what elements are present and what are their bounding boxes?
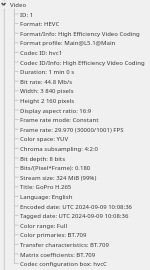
staticText: Chroma subsampling: 4:2:0 <box>20 145 98 153</box>
button[interactable]: Tagged date: UTC 2024-09-09 10:08:36 <box>0 210 150 221</box>
button[interactable]: Format profile: Main@L5.1@Main <box>0 37 150 48</box>
staticText: Display aspect ratio: 16:9 <box>20 107 92 115</box>
button[interactable]: Codec ID: hvc1 <box>0 47 150 58</box>
button[interactable]: Display aspect ratio: 16:9 <box>0 105 150 116</box>
staticText: Stream size: 324 MiB (99%) <box>20 174 97 182</box>
button[interactable]: Stream size: 324 MiB (99%) <box>0 172 150 183</box>
button[interactable]: Duration: 1 min 0 s <box>0 66 150 77</box>
button[interactable]: Collapse Video <box>0 0 150 10</box>
staticText: Width: 3 840 pixels <box>20 87 74 95</box>
staticText: Height 2 160 pixels <box>20 97 75 105</box>
button[interactable]: Width: 3 840 pixels <box>0 85 150 96</box>
staticText: Codec configuration box: hvcC <box>20 260 107 268</box>
button[interactable]: Color range: Full <box>0 220 150 231</box>
button[interactable]: Matrix coefficients: BT.709 <box>0 249 150 260</box>
staticText: Format profile: Main@L5.1@Main <box>20 39 116 47</box>
button[interactable]: Color space: YUV <box>0 133 150 144</box>
staticText: Language: English <box>20 193 73 201</box>
button[interactable]: Title: GoPro H.265 <box>0 181 150 192</box>
staticText: Title: GoPro H.265 <box>20 183 72 191</box>
staticText: Color range: Full <box>20 222 67 230</box>
staticText: Tagged date: UTC 2024-09-09 10:08:36 <box>20 212 129 220</box>
button[interactable]: Language: English <box>0 191 150 202</box>
staticText: Format/Info: High Efficiency Video Codin… <box>20 30 140 38</box>
button[interactable]: ID: 1 <box>0 9 150 20</box>
staticText: Bit rate: 44.8 Mb/s <box>20 78 73 86</box>
button[interactable]: Codec configuration box: hvcC <box>0 258 150 269</box>
staticText: Color space: YUV <box>20 135 69 143</box>
button[interactable]: Codec ID/Info: High Efficiency Video Cod… <box>0 57 150 68</box>
staticText: Duration: 1 min 0 s <box>20 68 75 76</box>
staticText: Codec ID/Info: High Efficiency Video Cod… <box>20 59 145 67</box>
button[interactable]: Frame rate mode: Constant <box>0 114 150 125</box>
button[interactable]: Format/Info: High Efficiency Video Codin… <box>0 28 150 39</box>
button[interactable]: Encoded date: UTC 2024-09-09 10:08:36 <box>0 201 150 212</box>
staticText: Matrix coefficients: BT.709 <box>20 251 96 259</box>
staticText: Format: HEVC <box>20 20 60 28</box>
button[interactable]: Transfer characteristics: BT.709 <box>0 239 150 250</box>
button[interactable]: Format: HEVC <box>0 18 150 29</box>
staticText: Encoded date: UTC 2024-09-09 10:08:36 <box>20 203 133 211</box>
button[interactable]: Bit rate: 44.8 Mb/s <box>0 76 150 87</box>
button[interactable]: Height 2 160 pixels <box>0 95 150 106</box>
staticText: Bit depth: 8 bits <box>20 155 66 163</box>
staticText: ID: 1 <box>20 11 34 19</box>
staticText: Transfer characteristics: BT.709 <box>20 241 109 249</box>
button[interactable]: Bit depth: 8 bits <box>0 153 150 164</box>
button[interactable]: Color primaries: BT.709 <box>0 229 150 240</box>
staticText: Frame rate: 29.970 (30000/1001) FPS <box>20 126 124 134</box>
staticText: Bits/(Pixel*Frame): 0.180 <box>20 164 91 172</box>
other: Collapse Video <box>0 0 150 10</box>
staticText: Codec ID: hvc1 <box>20 49 63 57</box>
staticText: Video <box>10 1 27 9</box>
button[interactable]: Chroma subsampling: 4:2:0 <box>0 143 150 154</box>
staticText: Frame rate mode: Constant <box>20 116 99 124</box>
button[interactable]: Frame rate: 29.970 (30000/1001) FPS <box>0 124 150 135</box>
button[interactable]: Bits/(Pixel*Frame): 0.180 <box>0 162 150 173</box>
staticText: Color primaries: BT.709 <box>20 231 87 239</box>
